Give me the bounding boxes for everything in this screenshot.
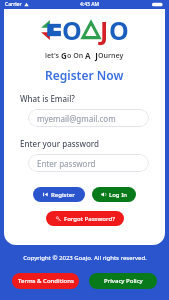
staticText: O [62,13,82,47]
button[interactable]: Privacy Policy [89,273,157,289]
staticText: Enter your password [20,138,100,149]
staticText: let's [45,51,61,61]
staticText: G [61,50,67,61]
button[interactable]: myemail@gmail.com [28,109,149,127]
staticText: Log In [109,191,128,199]
staticText: O [109,13,129,47]
button[interactable]: Register [33,187,85,202]
staticText: J [100,13,109,47]
staticText: What is Email? [20,93,75,104]
button[interactable]: Enter password [28,154,149,172]
staticText: J [91,50,98,61]
staticText: Register [51,191,75,199]
staticText: Terms & Conditions [18,277,74,285]
staticText: 4:43 AM [80,1,100,8]
staticText: Register Now [45,67,124,83]
staticText: Forgot Password? [64,215,115,223]
button[interactable]: Terms & Conditions [12,273,79,289]
staticText: Privacy Policy [104,277,143,285]
button[interactable]: Log In [92,187,136,202]
other: Register [43,192,48,197]
staticText: Carrier [5,1,22,8]
staticText: A [85,50,91,61]
other: Forgot Password [56,216,61,221]
staticText: Enter password [37,158,96,169]
staticText: myemail@gmail.com [37,113,116,124]
staticText: o On [67,51,85,61]
button[interactable]: Forgot Password [46,211,124,226]
staticText: Copyright © 2023 Goajo. All rights reser… [23,254,147,262]
staticText: Ourney [98,51,124,61]
other: Log In [101,192,106,197]
